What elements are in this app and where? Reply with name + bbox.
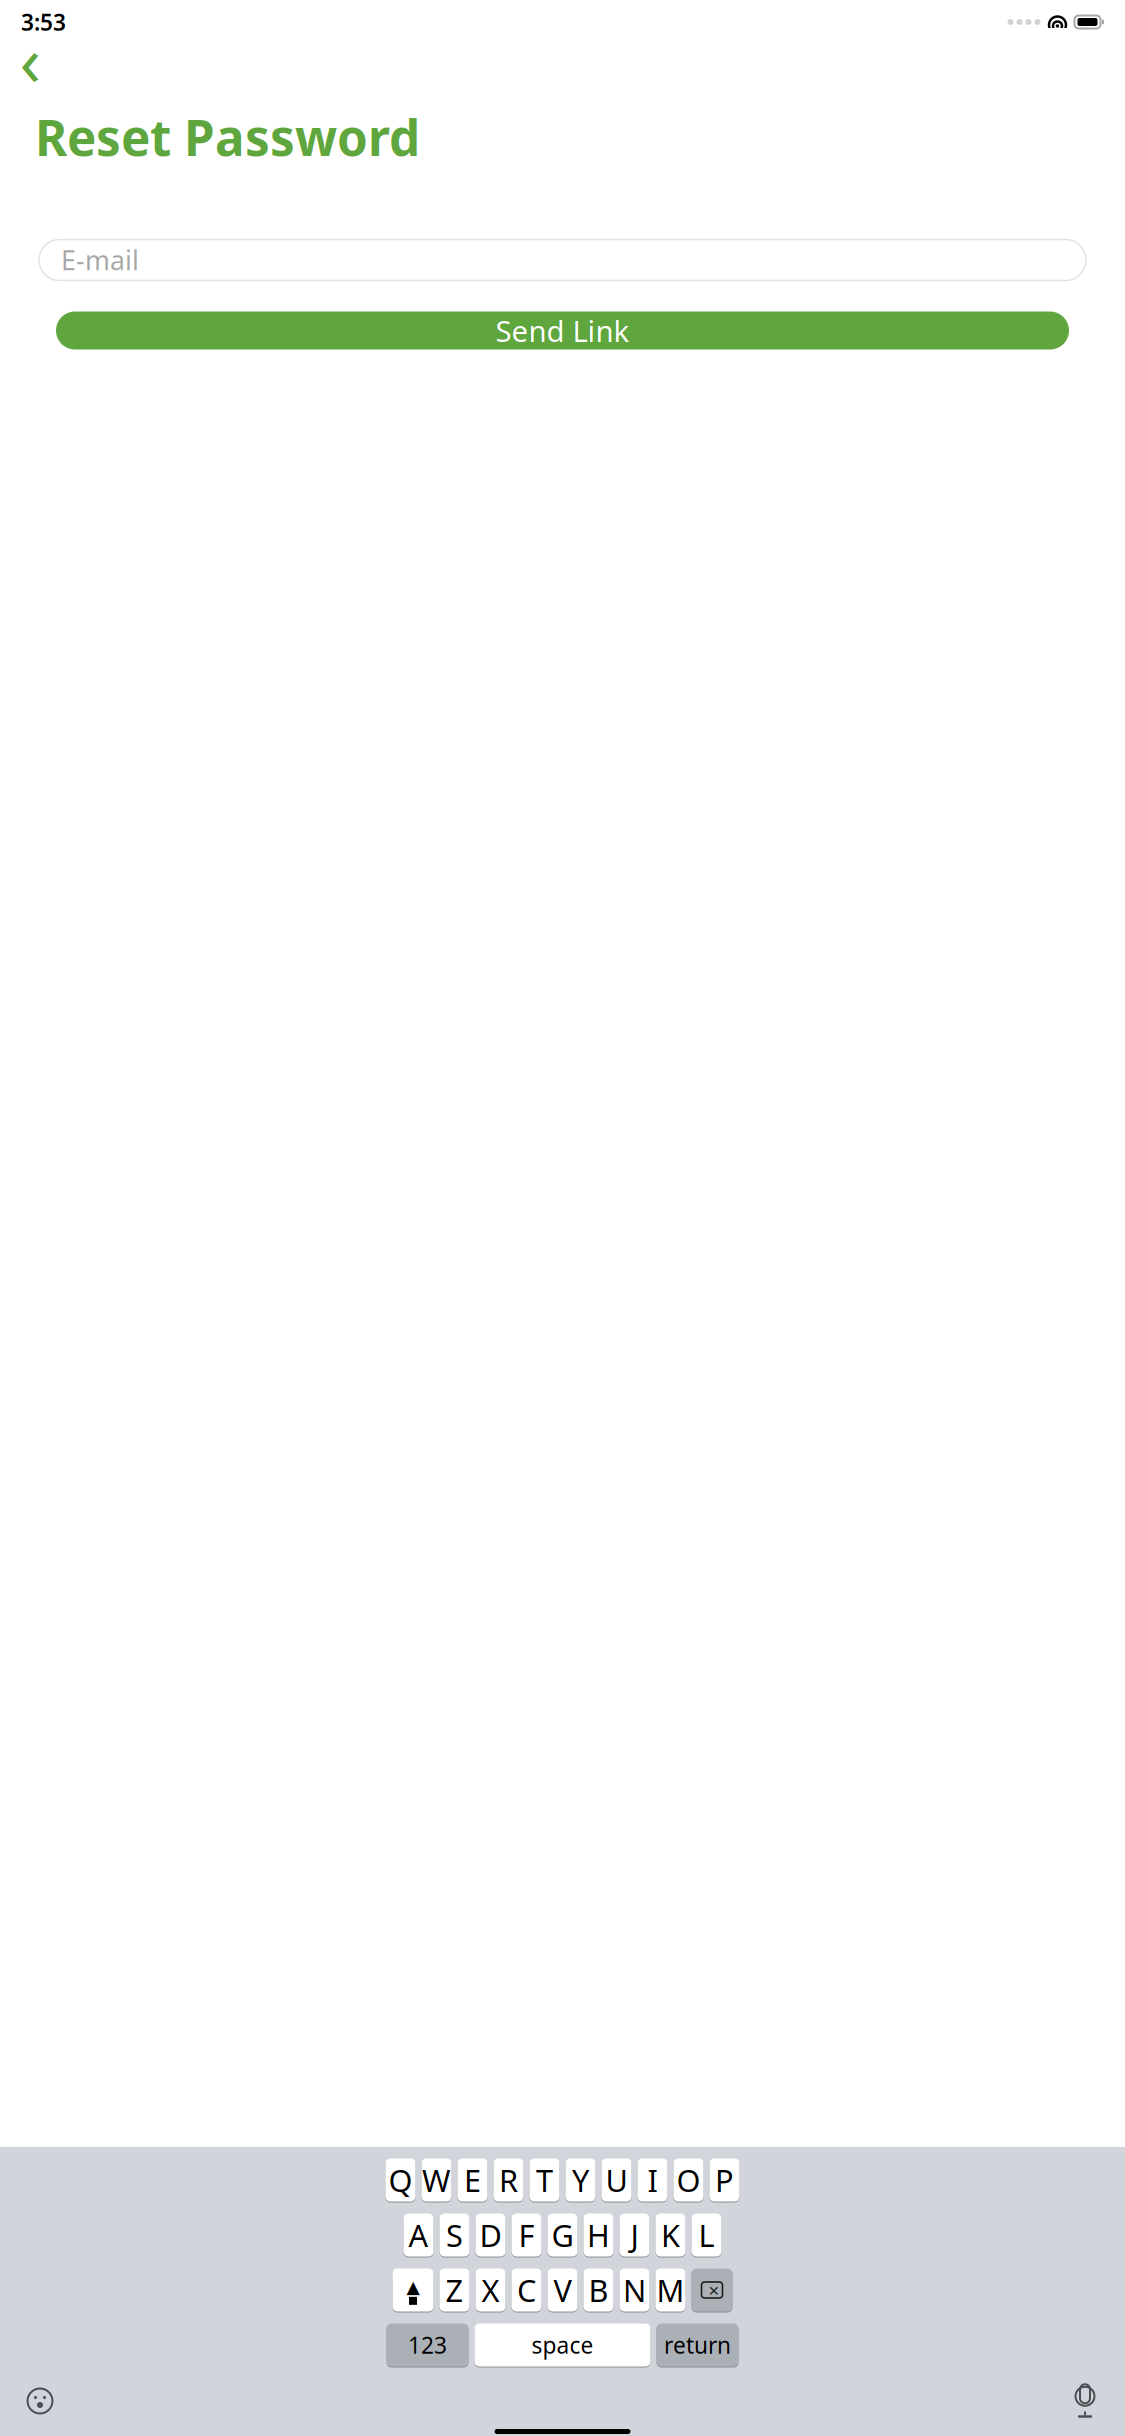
staticText: U xyxy=(605,2160,627,2200)
staticText: Reset Password xyxy=(35,104,420,169)
button[interactable]: E xyxy=(457,2158,487,2202)
staticText: R xyxy=(499,2160,518,2200)
staticText: space xyxy=(531,2330,593,2360)
staticText: J xyxy=(630,2215,638,2255)
button[interactable]: B xyxy=(583,2268,613,2312)
staticText: T xyxy=(536,2160,553,2200)
button[interactable]: 123 xyxy=(386,2323,468,2367)
staticText: W xyxy=(422,2160,451,2200)
staticText: 3:53 xyxy=(21,7,66,37)
staticText: B xyxy=(588,2270,608,2310)
staticText: × xyxy=(708,2278,719,2302)
button[interactable]: T xyxy=(529,2158,559,2202)
button[interactable]: I xyxy=(637,2158,667,2202)
staticText: C xyxy=(517,2270,536,2310)
button[interactable]: Shift xyxy=(392,2268,433,2312)
staticText: Send Link xyxy=(495,311,629,350)
button[interactable]: R xyxy=(493,2158,523,2202)
staticText: Y xyxy=(572,2160,589,2200)
staticText: 123 xyxy=(408,2330,447,2360)
button[interactable]: space xyxy=(474,2323,650,2367)
button[interactable]: S xyxy=(439,2213,469,2257)
button[interactable]: K xyxy=(655,2213,685,2257)
button[interactable]: X xyxy=(475,2268,505,2312)
button[interactable]: Delete xyxy=(691,2268,732,2312)
button[interactable]: Q xyxy=(385,2158,415,2202)
button[interactable]: Y xyxy=(565,2158,595,2202)
staticText: K xyxy=(661,2215,680,2255)
button[interactable]: C xyxy=(511,2268,541,2312)
button[interactable]: U xyxy=(601,2158,631,2202)
button[interactable]: Back xyxy=(4,46,56,90)
button[interactable]: O xyxy=(673,2158,703,2202)
staticText: V xyxy=(553,2270,571,2310)
staticText: G xyxy=(551,2215,573,2255)
button[interactable]: Dictate xyxy=(1063,2381,1107,2421)
button[interactable]: M xyxy=(655,2268,685,2312)
staticText: ▲ xyxy=(406,2277,419,2297)
button[interactable]: F xyxy=(511,2213,541,2257)
button[interactable]: Z xyxy=(439,2268,469,2312)
button[interactable]: Emoji xyxy=(18,2381,62,2421)
staticText: H xyxy=(587,2215,610,2255)
staticText: ‹ xyxy=(19,13,40,105)
staticText: Q xyxy=(388,2160,412,2200)
staticText: O xyxy=(676,2160,700,2200)
button[interactable]: P xyxy=(709,2158,739,2202)
staticText: A xyxy=(408,2215,428,2255)
button[interactable]: V xyxy=(547,2268,577,2312)
staticText: I xyxy=(647,2160,657,2200)
staticText: P xyxy=(715,2160,734,2200)
button[interactable]: return xyxy=(656,2323,738,2367)
staticText: S xyxy=(446,2215,463,2255)
staticText: M xyxy=(656,2270,684,2310)
staticText: Z xyxy=(445,2270,463,2310)
staticText: L xyxy=(698,2215,714,2255)
button[interactable]: H xyxy=(583,2213,613,2257)
staticText: return xyxy=(664,2330,731,2360)
staticText: N xyxy=(623,2270,646,2310)
staticText: D xyxy=(479,2215,501,2255)
button[interactable]: W xyxy=(421,2158,451,2202)
staticText: E-mail xyxy=(61,242,139,278)
button[interactable]: G xyxy=(547,2213,577,2257)
button[interactable]: Send Link xyxy=(56,311,1069,349)
button[interactable]: N xyxy=(619,2268,649,2312)
button[interactable]: L xyxy=(691,2213,721,2257)
button[interactable]: E-mail xyxy=(39,239,1086,280)
staticText: X xyxy=(481,2270,499,2310)
button[interactable]: A xyxy=(403,2213,433,2257)
staticText: F xyxy=(518,2215,534,2255)
staticText: E xyxy=(464,2160,481,2200)
button[interactable]: J xyxy=(619,2213,649,2257)
button[interactable]: D xyxy=(475,2213,505,2257)
